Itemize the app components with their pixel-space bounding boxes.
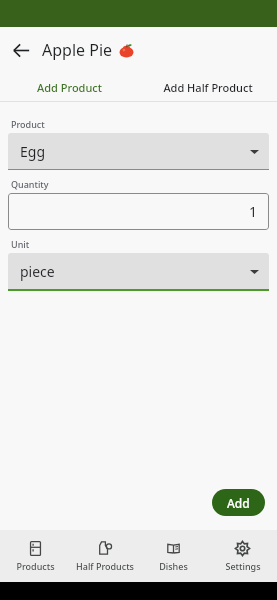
button[interactable]: Add Product: [0, 73, 138, 101]
button[interactable]: Add: [212, 489, 265, 516]
staticText: 1: [249, 202, 258, 221]
button[interactable]: Add Half Product: [138, 73, 277, 101]
staticText: Dishes: [159, 560, 188, 572]
button[interactable]: Back: [0, 29, 42, 71]
staticText: Add Product: [37, 80, 102, 95]
staticText: Products: [16, 560, 55, 572]
button[interactable]: Egg: [8, 133, 269, 169]
staticText: Unit: [11, 238, 30, 250]
staticText: Egg: [20, 142, 46, 161]
button[interactable]: 1: [8, 193, 269, 230]
button[interactable]: Settings: [208, 530, 277, 582]
button[interactable]: Dishes: [139, 530, 208, 582]
staticText: Quantity: [11, 178, 49, 190]
staticText: Add Half Product: [163, 80, 253, 95]
staticText: Apple Pie: [42, 39, 113, 61]
staticText: Settings: [225, 560, 261, 572]
button[interactable]: Products: [0, 530, 70, 582]
button[interactable]: Half Products: [70, 530, 139, 582]
button[interactable]: piece: [8, 253, 269, 289]
staticText: piece: [20, 262, 55, 281]
staticText: Add: [227, 495, 250, 511]
staticText: Product: [11, 118, 45, 130]
staticText: Half Products: [76, 560, 134, 572]
